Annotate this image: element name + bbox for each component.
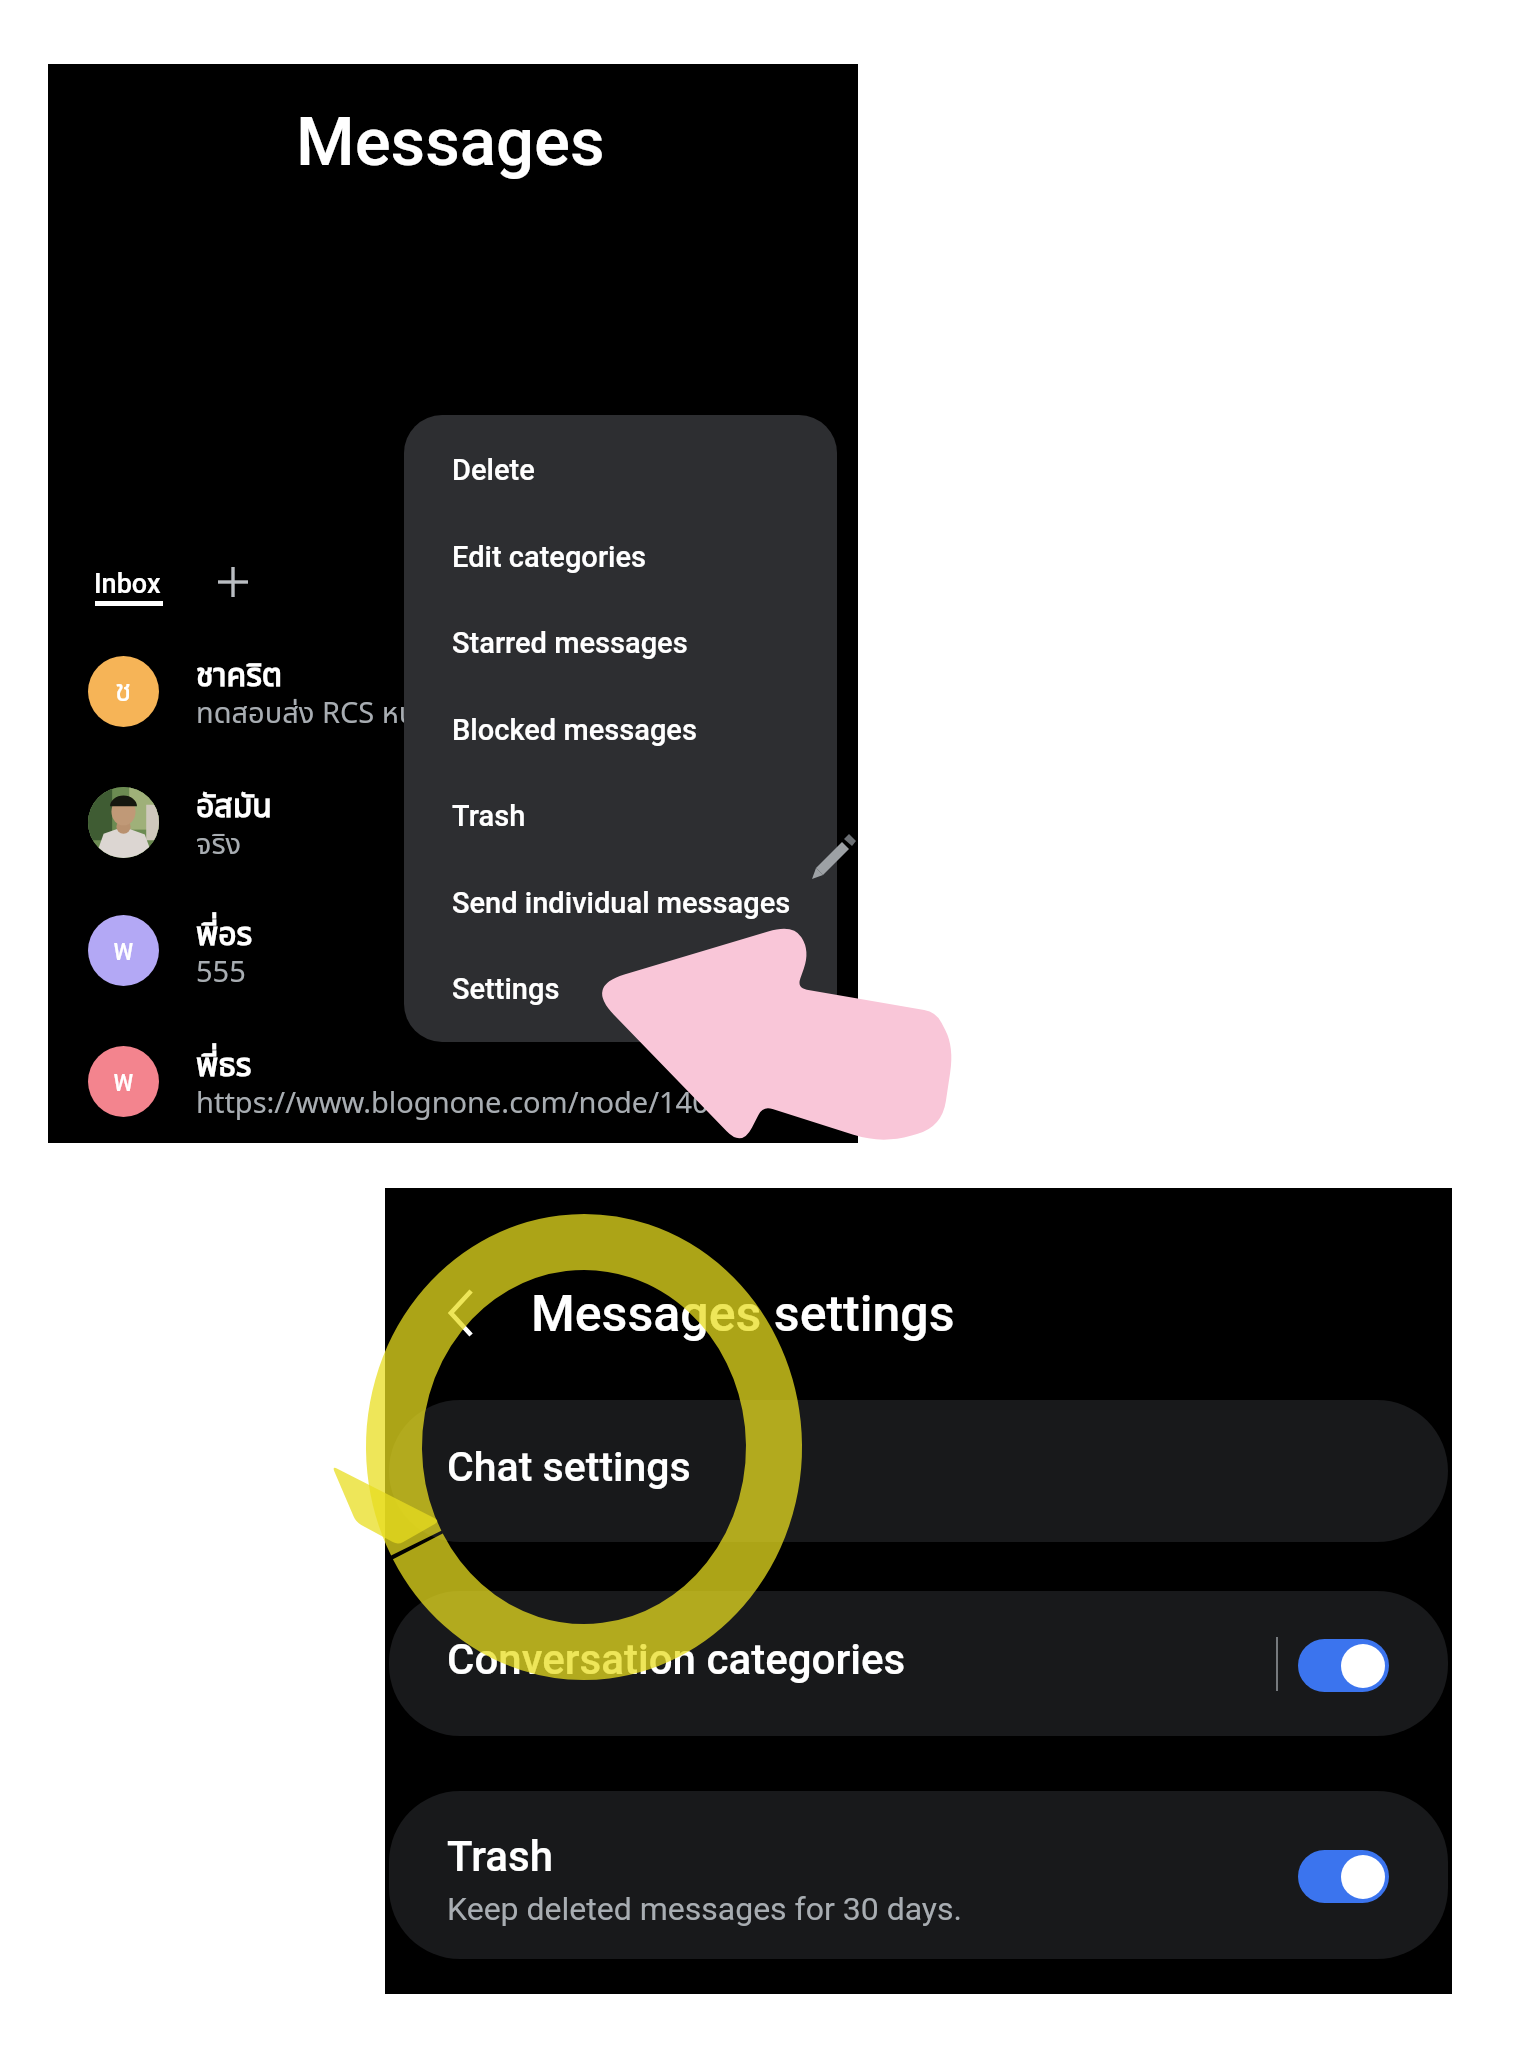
staticText: ชาคริต: [196, 652, 283, 700]
staticText: พ: [113, 1059, 134, 1104]
staticText: Settings: [452, 972, 560, 1006]
staticText: Inbox: [94, 568, 161, 600]
staticText: https://www.blognone.com/node/140589: [196, 1082, 759, 1126]
staticText: ช: [115, 669, 132, 714]
staticText: Send individual messages: [452, 886, 791, 920]
button[interactable]: Settings: [404, 945, 837, 1032]
button[interactable]: พ: [48, 899, 858, 1003]
staticText: Chat settings: [447, 1443, 691, 1491]
staticText: Keep deleted messages for 30 days.: [447, 1890, 962, 1928]
staticText: พ: [113, 928, 134, 973]
button[interactable]: Inbox: [88, 556, 170, 616]
button[interactable]: Blocked messages: [404, 686, 837, 773]
staticText: Messages: [296, 103, 605, 182]
button[interactable]: Back: [437, 1289, 485, 1337]
button[interactable]: Toggle setting: [1298, 1850, 1389, 1903]
button[interactable]: Trash: [389, 1791, 1448, 1959]
staticText: พี่ธร: [196, 1042, 252, 1090]
staticText: Delete: [452, 453, 535, 487]
button[interactable]: Starred messages: [404, 599, 837, 686]
button[interactable]: Delete: [404, 426, 837, 513]
staticText: อัสมัน: [196, 783, 272, 831]
staticText: 555: [196, 951, 246, 995]
button[interactable]: อัสมัน: [48, 771, 858, 875]
staticText: Edit categories: [452, 540, 647, 574]
staticText: Trash: [447, 1832, 554, 1881]
button[interactable]: Send individual messages: [404, 859, 837, 946]
button[interactable]: Trash: [404, 772, 837, 859]
button[interactable]: Edit categories: [404, 513, 837, 600]
staticText: Messages settings: [531, 1285, 955, 1344]
staticText: จริง: [196, 823, 242, 867]
staticText: Conversation categories: [447, 1635, 906, 1684]
staticText: พี่อร: [196, 911, 253, 959]
staticText: ทดสอบส่ง RCS หน่อย: [196, 692, 451, 736]
staticText: Starred messages: [452, 626, 688, 660]
button[interactable]: พ: [48, 1030, 858, 1134]
button[interactable]: ช: [48, 640, 858, 744]
button[interactable]: Compose new message: [808, 832, 856, 880]
staticText: Trash: [452, 799, 526, 833]
button[interactable]: Conversation categories: [389, 1591, 1448, 1736]
button[interactable]: Start new conversation: [201, 550, 265, 614]
staticText: Blocked messages: [452, 713, 697, 747]
button[interactable]: Toggle setting: [1298, 1639, 1389, 1692]
button[interactable]: Chat settings: [389, 1400, 1448, 1542]
